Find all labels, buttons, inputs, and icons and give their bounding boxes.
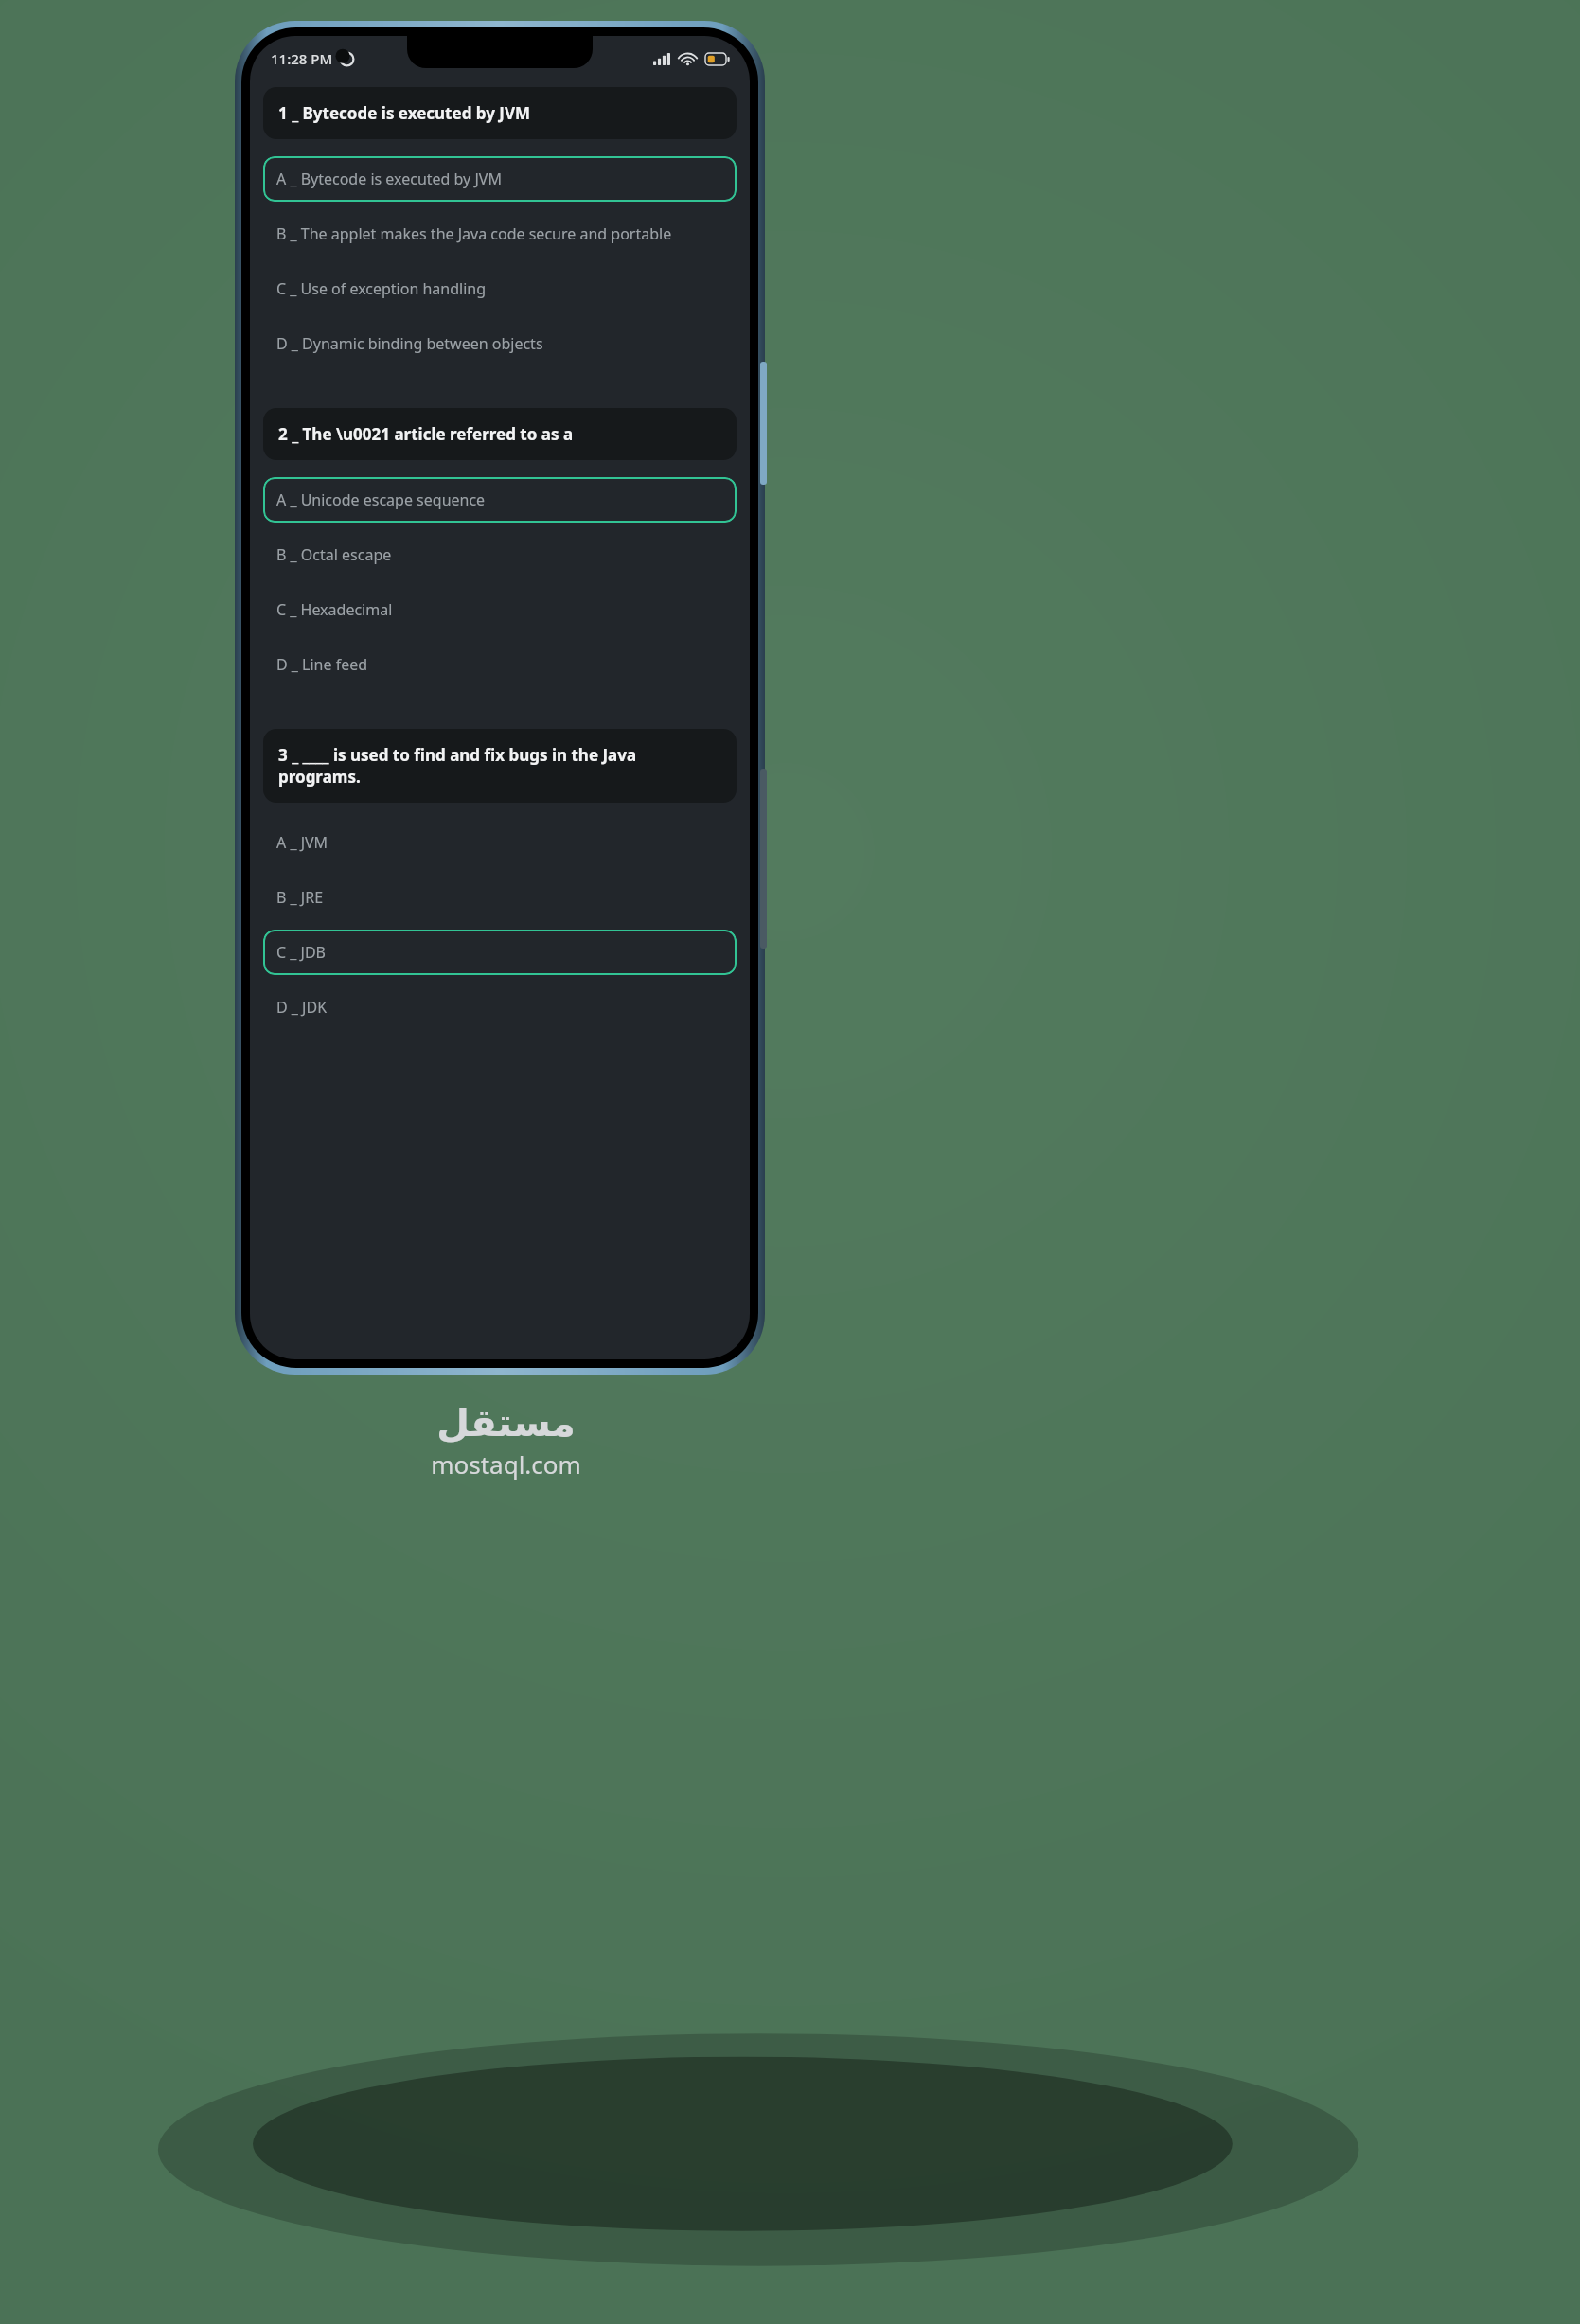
button[interactable]: 2 _ The \u0021 article referred to as a (263, 408, 737, 460)
staticText: C _ JDB (276, 942, 326, 963)
button[interactable]: C _ Use of exception handling (263, 266, 737, 311)
staticText: A _ Unicode escape sequence (276, 489, 486, 510)
staticText: mostaql.com (431, 1447, 581, 1481)
button[interactable]: A _ Bytecode is executed by JVM (263, 156, 737, 202)
staticText: C _ Use of exception handling (276, 278, 487, 299)
staticText: B _ The applet makes the Java code secur… (276, 223, 672, 244)
staticText: B _ Octal escape (276, 544, 392, 565)
staticText: C _ Hexadecimal (276, 599, 393, 620)
staticText: B _ JRE (276, 887, 324, 908)
staticText: D _ JDK (276, 997, 328, 1018)
button[interactable]: C _ JDB (263, 930, 737, 975)
staticText: 11:28 PM (271, 49, 333, 68)
staticText: 2 _ The \u0021 article referred to as a (278, 423, 574, 445)
staticText: A _ Bytecode is executed by JVM (276, 169, 502, 189)
staticText: D _ Line feed (276, 654, 368, 675)
button[interactable]: D _ Line feed (263, 642, 737, 687)
staticText: D _ Dynamic binding between objects (276, 333, 543, 354)
button[interactable]: B _ JRE (263, 875, 737, 920)
staticText: مستقل (436, 1401, 576, 1446)
button[interactable]: A _ JVM (263, 820, 737, 865)
staticText: 3 _ ____ is used to find and fix bugs in… (278, 744, 721, 788)
button[interactable]: B _ The applet makes the Java code secur… (263, 211, 737, 257)
staticText: A _ JVM (276, 832, 328, 853)
button[interactable]: 3 _ ____ is used to find and fix bugs in… (263, 729, 737, 803)
button[interactable]: A _ Unicode escape sequence (263, 477, 737, 523)
button[interactable]: C _ Hexadecimal (263, 587, 737, 632)
button[interactable]: D _ Dynamic binding between objects (263, 321, 737, 366)
button[interactable]: 1 _ Bytecode is executed by JVM (263, 87, 737, 139)
staticText: 1 _ Bytecode is executed by JVM (278, 102, 531, 124)
button[interactable]: D _ JDK (263, 985, 737, 1030)
button[interactable]: B _ Octal escape (263, 532, 737, 577)
